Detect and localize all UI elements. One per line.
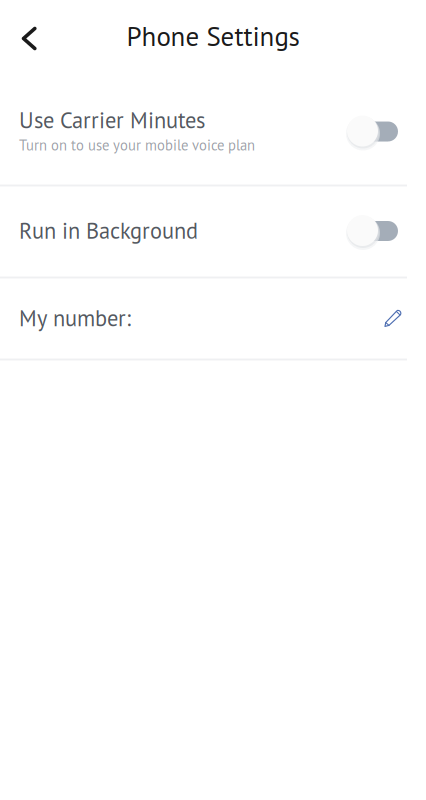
staticText: Turn on to use your mobile voice plan [19,135,255,154]
staticText: Phone Settings [126,19,299,53]
staticText: Use Carrier Minutes [19,105,205,134]
button[interactable]: Run in Background [0,187,426,276]
button[interactable]: Use Carrier Minutes [0,76,426,184]
button[interactable]: My number: [0,279,426,358]
staticText: Run in Background [19,216,198,245]
button[interactable]: Back [0,11,58,65]
staticText: My number: [19,303,131,332]
